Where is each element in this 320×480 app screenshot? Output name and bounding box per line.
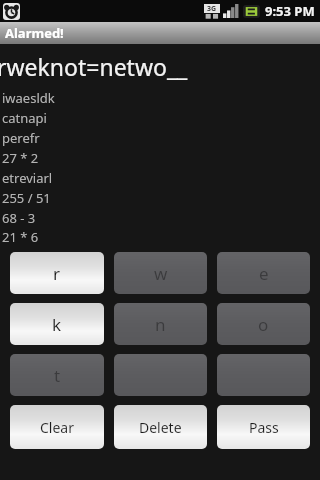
button[interactable]: Delete bbox=[114, 405, 207, 449]
button[interactable]: Empty letter slot bbox=[114, 354, 207, 396]
staticText: 27 * 2 bbox=[2, 149, 39, 167]
button[interactable]: n bbox=[114, 303, 207, 345]
staticText: k bbox=[52, 313, 62, 336]
staticText: t bbox=[54, 364, 61, 387]
staticText: n bbox=[155, 313, 166, 336]
button[interactable]: t bbox=[10, 354, 104, 396]
staticText: iwaesldk bbox=[2, 89, 55, 107]
staticText: 255 / 51 bbox=[2, 189, 51, 207]
staticText: etreviarl bbox=[2, 169, 53, 187]
staticText: w bbox=[154, 262, 168, 285]
staticText: Pass bbox=[249, 418, 279, 437]
button[interactable]: r bbox=[10, 252, 104, 294]
staticText: 3G bbox=[207, 4, 217, 14]
button[interactable]: Clear bbox=[10, 405, 104, 449]
staticText: 9:53 PM bbox=[265, 2, 315, 20]
button[interactable]: k bbox=[10, 303, 104, 345]
staticText: Clear bbox=[40, 418, 74, 437]
staticText: r bbox=[53, 262, 61, 285]
staticText: Delete bbox=[139, 418, 182, 437]
staticText: catnapi bbox=[2, 109, 47, 127]
staticText: 21 * 6 bbox=[2, 228, 39, 244]
button[interactable]: Pass bbox=[217, 405, 310, 449]
button[interactable]: e bbox=[217, 252, 310, 294]
staticText: rweknot=netwo__ bbox=[0, 51, 188, 82]
other: Alarm set bbox=[3, 3, 20, 20]
button[interactable]: w bbox=[114, 252, 207, 294]
staticText: e bbox=[259, 262, 269, 285]
button[interactable]: Empty letter slot bbox=[217, 354, 310, 396]
staticText: Alarmed! bbox=[5, 24, 64, 42]
staticText: 68 - 3 bbox=[2, 209, 36, 227]
staticText: perefr bbox=[2, 129, 40, 147]
button[interactable]: o bbox=[217, 303, 310, 345]
staticText: o bbox=[258, 313, 269, 336]
